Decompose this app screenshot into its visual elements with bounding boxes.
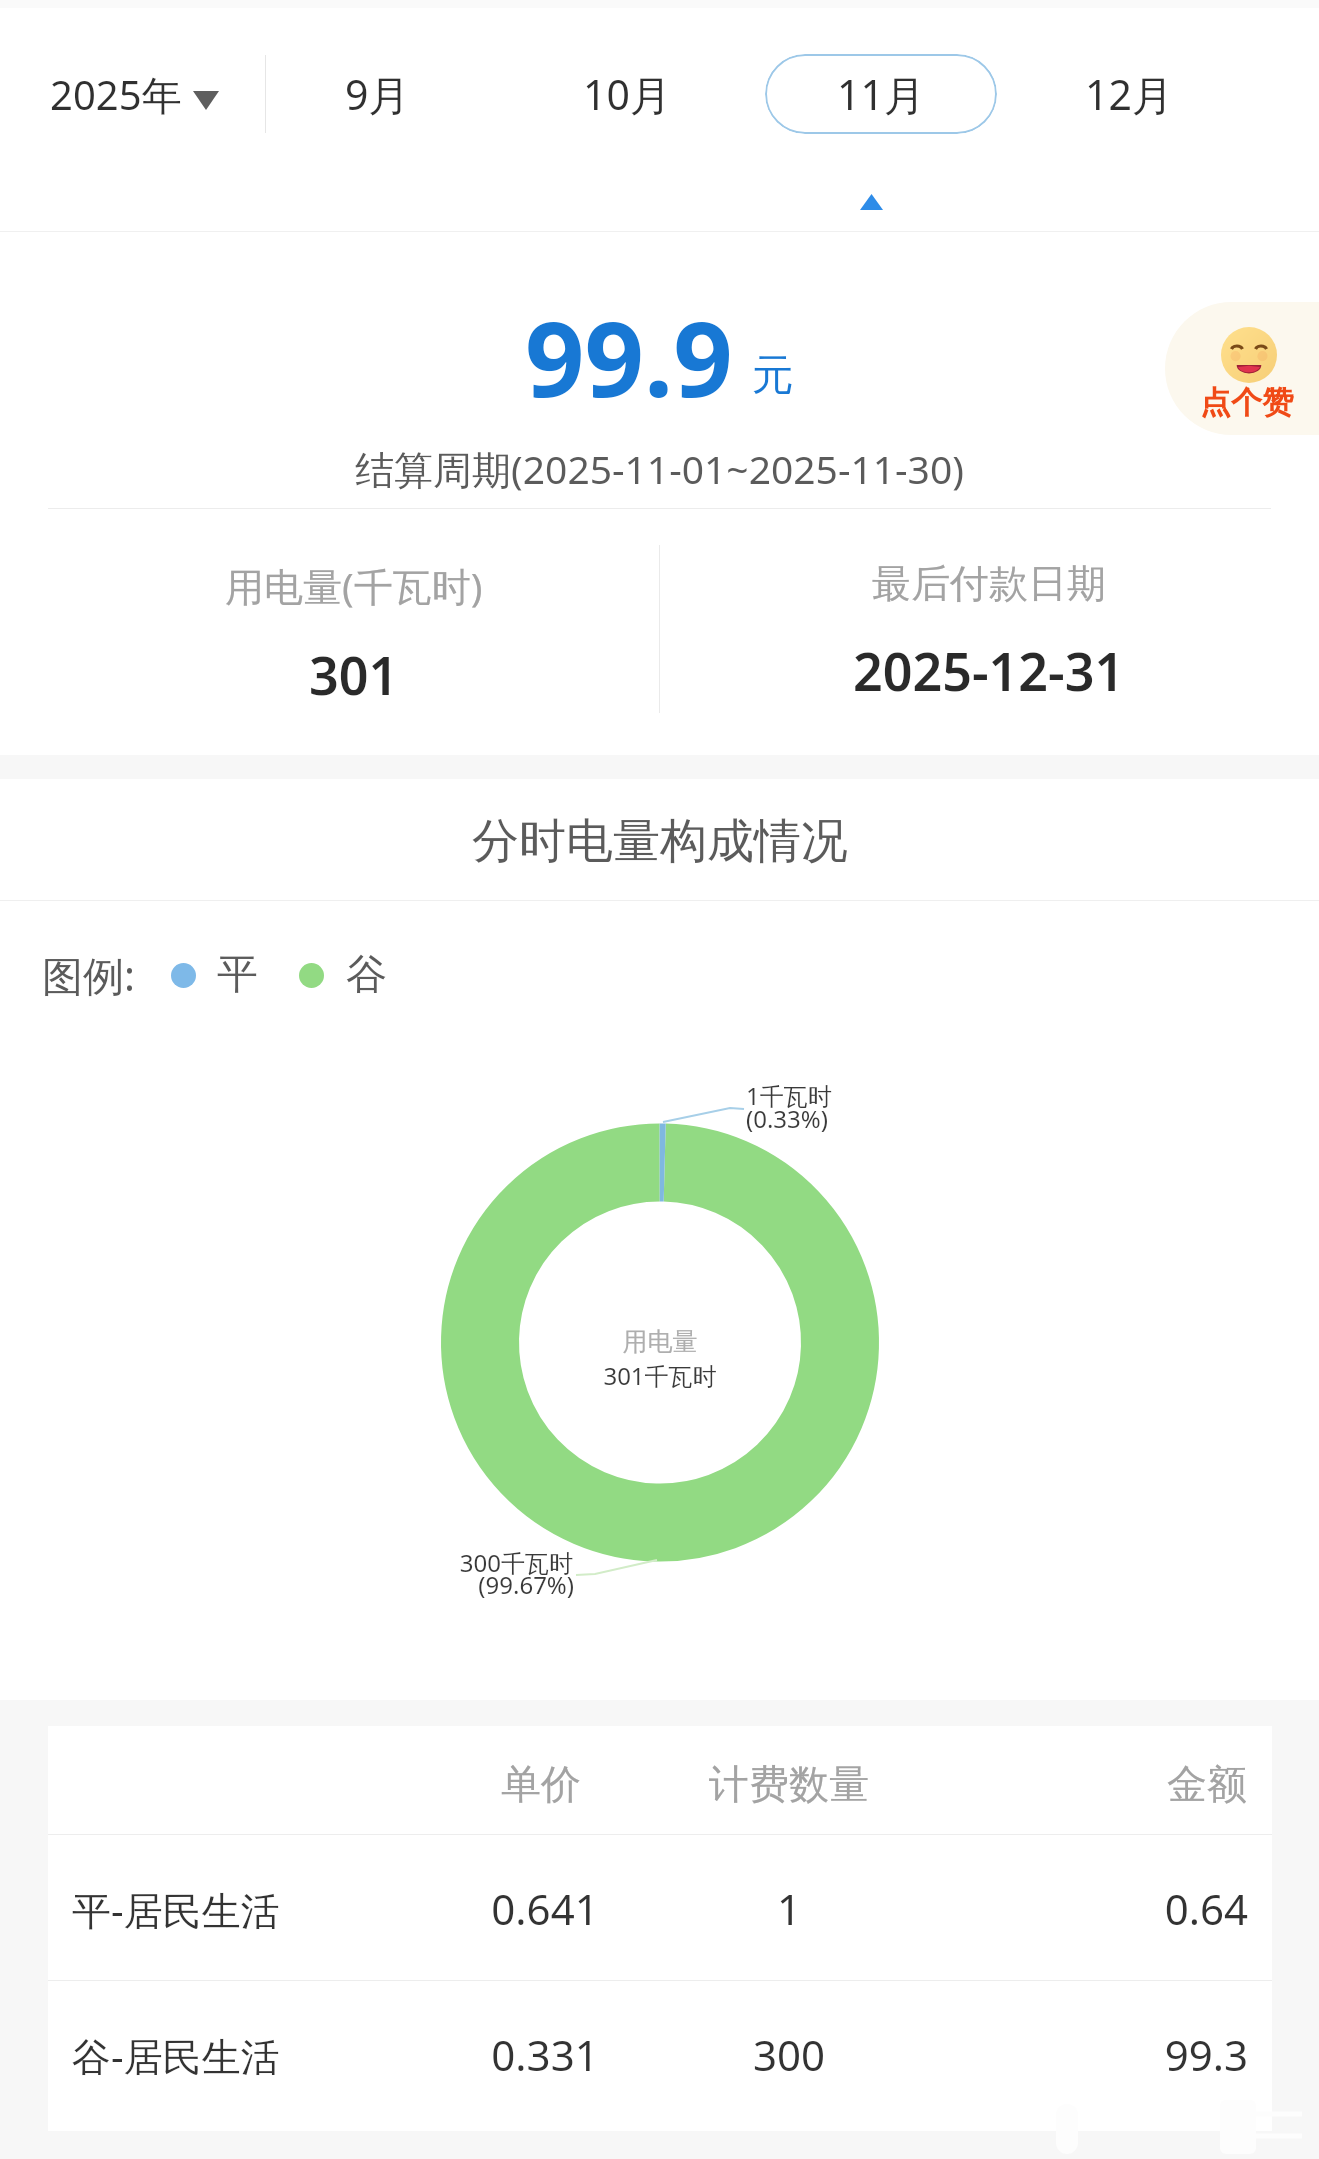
staticText: 301 [309,639,399,710]
staticText: 金额 [1047,1759,1247,1809]
staticText: 平-居民生活 [72,1883,280,1936]
button[interactable]: 最后付款日期 [659,545,1319,725]
staticText: 用电量 [510,1326,810,1357]
staticText: 元 [752,349,794,402]
staticText: 用电量(千瓦时) [225,559,483,612]
staticText: 12月 [1085,66,1173,122]
button[interactable]: 点个赞 [1165,302,1319,435]
staticText: 9月 [345,66,410,122]
staticText: 计费数量 [689,1759,889,1809]
staticText: 最后付款日期 [872,559,1106,608]
staticText: 分时电量构成情况 [472,812,848,871]
staticText: 99.9 [525,286,733,428]
button[interactable]: 2025年 [50,54,219,134]
staticText: 2025-12-31 [853,635,1125,706]
staticText: 平 [217,949,258,1001]
staticText: 1 [689,1880,889,1937]
staticText: 谷-居民生活 [72,2029,280,2082]
button[interactable]: 谷-居民生活 [48,1981,1272,2126]
staticText: 11月 [837,66,925,122]
staticText: 0.64 [1048,1880,1248,1937]
staticText: 0.331 [445,2026,645,2083]
staticText: 10月 [583,66,671,122]
staticText: 0.641 [445,1880,645,1937]
staticText: 图例: [42,947,135,1003]
button[interactable]: 9月 [261,54,493,134]
staticText: 1千瓦时 [746,1079,832,1112]
button[interactable]: 用电量(千瓦时) [48,545,659,725]
staticText: 点个赞 [1200,383,1293,422]
staticText: 300 [689,2026,889,2083]
button[interactable]: 平-居民生活 [48,1835,1272,1980]
button[interactable]: 12月 [1013,54,1245,134]
staticText: 2025年 [50,67,182,122]
button[interactable]: 10月 [511,54,743,134]
staticText: 结算周期(2025-11-01~2025-11-30) [0,442,1319,495]
staticText: 单价 [441,1759,641,1809]
staticText: 301千瓦时 [510,1359,810,1392]
staticText: 99.3 [1048,2026,1248,2083]
staticText: (0.33%) [746,1102,828,1135]
other: 当前月份指示 [860,194,883,210]
staticText: 300千瓦时 [312,1546,573,1579]
button[interactable]: 11月 [765,54,997,134]
staticText: (99.67%) [312,1568,574,1601]
staticText: 谷 [346,949,387,1001]
